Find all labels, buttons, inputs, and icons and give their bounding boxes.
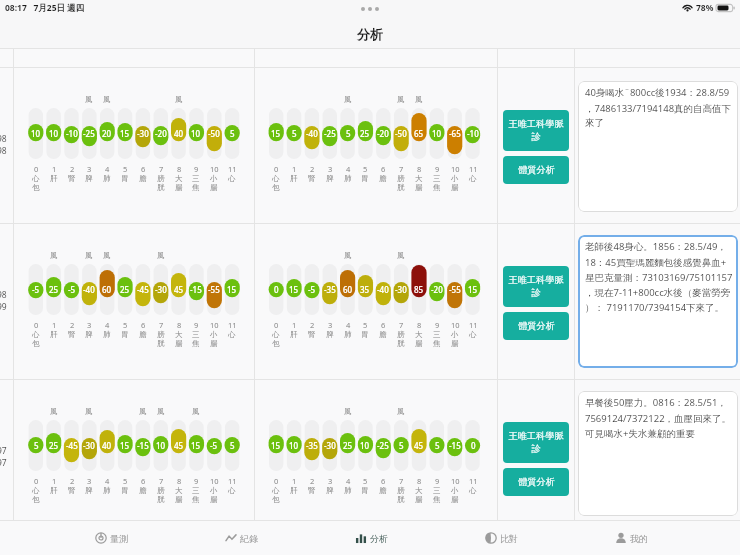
- staticText: 35: [360, 284, 370, 295]
- button[interactable]: 王唯工科學脈診: [503, 110, 569, 151]
- staticText: 6: [381, 164, 386, 174]
- staticText: 4: [346, 320, 351, 330]
- staticText: 體質分析: [518, 320, 555, 332]
- staticText: 10: [191, 128, 201, 139]
- staticText: 風: [157, 251, 165, 260]
- staticText: 三: [192, 174, 200, 183]
- staticText: -30: [137, 128, 149, 139]
- staticText: 焦: [192, 495, 200, 504]
- staticText: 包: [272, 495, 280, 504]
- staticText: 肝: [290, 330, 298, 339]
- staticText: 15: [468, 284, 478, 295]
- staticText: -50: [208, 128, 220, 139]
- staticText: 膀: [157, 174, 165, 183]
- button[interactable]: 紀錄: [176, 521, 306, 555]
- staticText: -40: [377, 284, 389, 295]
- staticText: 量測: [110, 533, 128, 544]
- staticText: 4: [346, 476, 351, 486]
- staticText: 2: [70, 164, 75, 174]
- staticText: 風: [50, 251, 58, 260]
- staticText: 風: [344, 251, 352, 260]
- staticText: 11: [228, 320, 237, 330]
- staticText: 膀: [157, 330, 165, 339]
- button[interactable]: 我的: [566, 521, 696, 555]
- button[interactable]: 王唯工科學脈診: [503, 422, 569, 463]
- staticText: 胱: [157, 495, 165, 504]
- staticText: 肝: [50, 486, 58, 495]
- staticText: 9: [194, 164, 199, 174]
- staticText: 2: [70, 476, 75, 486]
- staticText: 3: [328, 476, 333, 486]
- button[interactable]: 體質分析: [503, 156, 569, 184]
- staticText: 5: [399, 440, 404, 451]
- staticText: -30: [155, 284, 167, 295]
- staticText: 腎: [308, 330, 316, 339]
- button[interactable]: 40身喝水¨800cc後1934：28.8/59 ，7486133/719414…: [578, 81, 738, 212]
- staticText: 10: [451, 164, 460, 174]
- staticText: 胱: [397, 183, 405, 192]
- staticText: 風: [139, 407, 147, 416]
- staticText: -30: [395, 284, 407, 295]
- staticText: 60: [343, 284, 353, 295]
- staticText: 40: [102, 440, 112, 451]
- staticText: 6: [141, 320, 146, 330]
- staticText: 三: [433, 174, 441, 183]
- staticText: 腸: [415, 495, 423, 504]
- staticText: 膽: [379, 486, 387, 495]
- button[interactable]: 早餐後50壓力。0816：28.5/51， 7569124/7372122，血壓…: [578, 391, 738, 516]
- staticText: 大: [175, 330, 183, 339]
- staticText: 10: [432, 128, 442, 139]
- button[interactable]: 體質分析: [503, 468, 569, 496]
- staticText: 60: [102, 284, 112, 295]
- staticText: 2: [70, 320, 75, 330]
- staticText: 15: [120, 440, 130, 451]
- staticText: 11: [469, 320, 478, 330]
- staticText: 風: [50, 407, 58, 416]
- staticText: -25: [83, 128, 95, 139]
- staticText: 風: [344, 95, 352, 104]
- button[interactable]: 王唯工科學脈診: [503, 266, 569, 307]
- staticText: 9: [194, 476, 199, 486]
- staticText: 膀: [157, 486, 165, 495]
- staticText: -5: [210, 440, 218, 451]
- staticText: 5: [292, 128, 297, 139]
- staticText: 包: [32, 339, 40, 348]
- staticText: 5: [363, 320, 368, 330]
- staticText: 王唯工科學脈診: [504, 274, 568, 299]
- staticText: 肺: [103, 486, 111, 495]
- staticText: 0: [34, 164, 39, 174]
- staticText: 風: [103, 95, 111, 104]
- staticText: 腸: [451, 183, 459, 192]
- staticText: -40: [83, 284, 95, 295]
- staticText: 0: [471, 440, 476, 451]
- staticText: 0: [34, 320, 39, 330]
- staticText: 5: [346, 128, 351, 139]
- staticText: -30: [324, 440, 336, 451]
- button[interactable]: 體質分析: [503, 312, 569, 340]
- staticText: 40: [174, 128, 184, 139]
- staticText: 78%: [696, 2, 714, 14]
- staticText: 小: [210, 486, 218, 495]
- staticText: 肝: [290, 486, 298, 495]
- staticText: 25: [49, 284, 59, 295]
- staticText: 1: [52, 476, 57, 486]
- button[interactable]: 老師後48身心。1856：28.5/49， 18：45買聖瑪麗麵包後感覺鼻血+ …: [578, 235, 738, 368]
- staticText: 風: [397, 407, 405, 416]
- staticText: 心: [32, 330, 40, 339]
- staticText: 脾: [326, 486, 334, 495]
- staticText: 25: [120, 284, 130, 295]
- staticText: 膽: [139, 486, 147, 495]
- staticText: 小: [451, 330, 459, 339]
- staticText: 2: [310, 320, 315, 330]
- staticText: -25: [377, 440, 389, 451]
- staticText: 9: [435, 320, 440, 330]
- button[interactable]: 比對: [436, 521, 566, 555]
- staticText: -65: [449, 128, 461, 139]
- staticText: 風: [192, 407, 200, 416]
- staticText: 8: [177, 320, 182, 330]
- button[interactable]: 量測: [46, 521, 176, 555]
- button[interactable]: 分析: [306, 521, 436, 555]
- staticText: 風: [415, 95, 423, 104]
- staticText: 腸: [451, 495, 459, 504]
- staticText: -55: [449, 284, 461, 295]
